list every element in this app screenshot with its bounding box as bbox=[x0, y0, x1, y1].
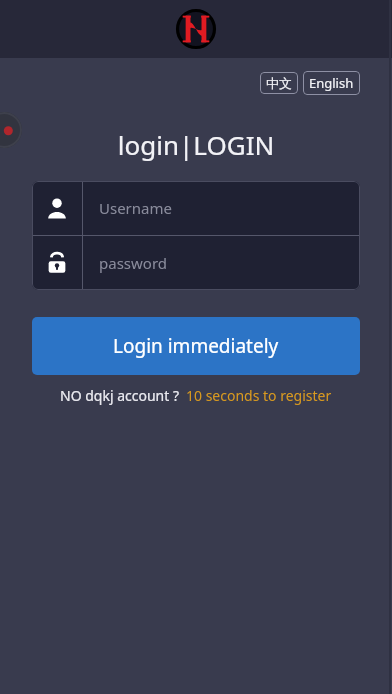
staticText: password bbox=[99, 253, 167, 273]
button[interactable]: Logo bbox=[174, 7, 218, 51]
button[interactable]: 10 seconds to register bbox=[186, 386, 332, 405]
button[interactable]: Login immediately bbox=[32, 317, 360, 375]
staticText: 中文 bbox=[266, 75, 292, 91]
button[interactable]: password bbox=[32, 236, 360, 290]
staticText: login|LOGIN bbox=[0, 127, 392, 162]
button[interactable]: English bbox=[303, 71, 360, 95]
button[interactable]: 中文 bbox=[260, 72, 298, 94]
button[interactable]: Username bbox=[32, 181, 360, 235]
staticText: Username bbox=[99, 198, 172, 218]
staticText: NO dqkj account ? bbox=[60, 386, 179, 405]
button[interactable]: Floating action bbox=[0, 112, 22, 148]
staticText: English bbox=[309, 74, 354, 92]
staticText: 10 seconds to register bbox=[186, 386, 332, 405]
staticText: Login immediately bbox=[113, 333, 279, 359]
